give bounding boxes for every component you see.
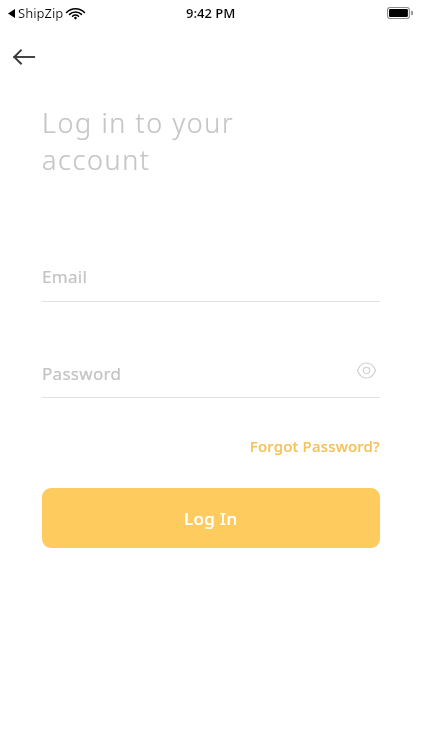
button[interactable]: Show password xyxy=(352,356,380,384)
button[interactable]: Log In xyxy=(42,488,380,548)
button[interactable]: Back xyxy=(4,37,44,77)
button[interactable]: Email xyxy=(42,256,380,302)
button[interactable]: Forgot Password? xyxy=(230,430,380,462)
staticText: Forgot Password? xyxy=(249,436,380,456)
staticText: Password xyxy=(42,362,122,385)
staticText: 9:42 PM xyxy=(186,4,236,22)
staticText: account xyxy=(42,141,151,178)
staticText: Log in to your xyxy=(42,104,235,141)
staticText: Log In xyxy=(184,507,238,530)
staticText: ShipZip xyxy=(18,4,64,22)
button[interactable]: Password xyxy=(42,354,380,398)
staticText: Email xyxy=(42,265,88,288)
